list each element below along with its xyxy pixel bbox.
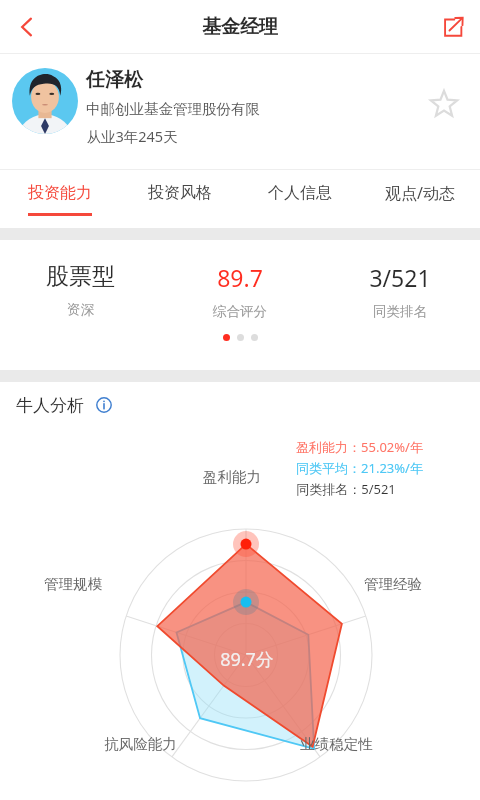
- staticText: 管理经验: [364, 575, 422, 593]
- staticText: 89.7分: [220, 647, 274, 672]
- staticText: 基金经理: [202, 15, 278, 39]
- staticText: 综合评分: [213, 303, 267, 320]
- staticText: 3/521: [369, 262, 431, 293]
- staticText: 同类排名：5/521: [296, 480, 396, 498]
- button[interactable]: Info: [92, 393, 116, 417]
- button[interactable]: 盈利能力：55.02%/年: [288, 432, 431, 504]
- button[interactable]: 任泽松: [0, 54, 480, 170]
- staticText: 牛人分析: [16, 395, 84, 416]
- staticText: 观点/动态: [385, 182, 455, 204]
- button[interactable]: Share: [426, 0, 480, 54]
- staticText: 同类排名: [373, 303, 427, 320]
- staticText: 投资风格: [148, 183, 212, 203]
- staticText: 个人信息: [268, 183, 332, 203]
- button[interactable]: 投资风格: [120, 170, 240, 228]
- staticText: 从业3年245天: [86, 126, 178, 146]
- button[interactable]: Back: [0, 0, 54, 54]
- button[interactable]: 3/521: [320, 262, 480, 320]
- staticText: 中邮创业基金管理股份有限: [86, 100, 260, 118]
- staticText: 业绩稳定性: [300, 735, 373, 753]
- staticText: 抗风险能力: [104, 735, 177, 753]
- staticText: 股票型: [46, 262, 115, 291]
- button[interactable]: 投资能力: [0, 170, 120, 228]
- staticText: 89.7: [217, 262, 263, 293]
- staticText: 盈利能力：55.02%/年: [296, 438, 423, 456]
- staticText: 投资能力: [28, 183, 92, 203]
- button[interactable]: Favorite: [420, 80, 468, 128]
- button[interactable]: 个人信息: [240, 170, 360, 228]
- staticText: 管理规模: [44, 575, 102, 593]
- staticText: 任泽松: [86, 68, 143, 92]
- staticText: 同类平均：21.23%/年: [296, 459, 423, 477]
- button[interactable]: 89.7: [160, 262, 320, 320]
- button[interactable]: 股票型: [0, 262, 160, 318]
- staticText: 盈利能力: [203, 468, 261, 486]
- staticText: 资深: [67, 301, 94, 318]
- button[interactable]: 观点/动态: [360, 170, 480, 228]
